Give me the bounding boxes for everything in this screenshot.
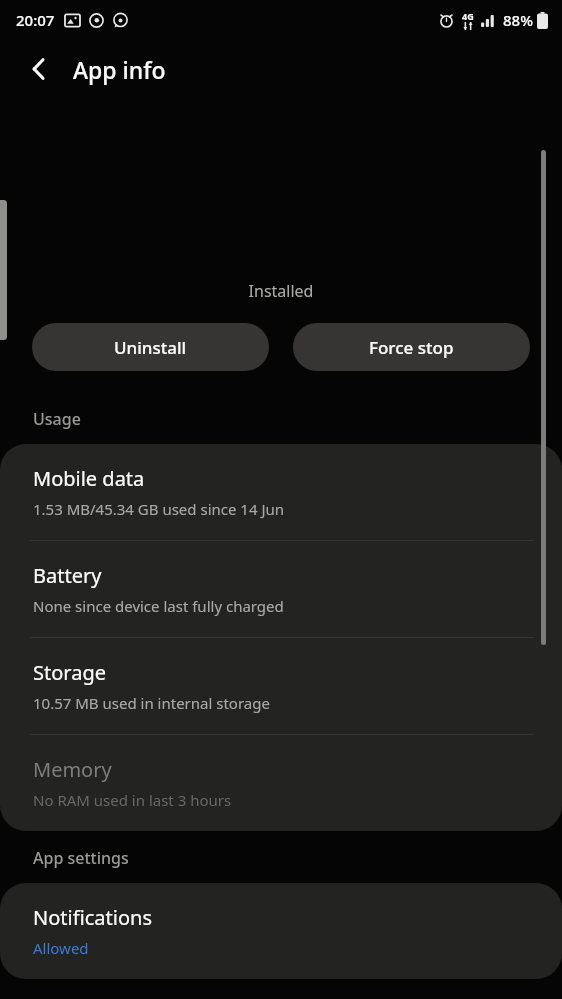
button[interactable]: Memory: [0, 735, 562, 831]
staticText: 88%: [503, 10, 533, 30]
staticText: 10.57 MB used in internal storage: [33, 693, 270, 713]
staticText: Storage: [33, 659, 106, 686]
button[interactable]: Notifications: [0, 883, 562, 979]
staticText: App settings: [33, 847, 129, 869]
staticText: 20:07: [16, 10, 55, 30]
button[interactable]: Storage: [0, 638, 562, 734]
button[interactable]: Back: [18, 48, 60, 90]
staticText: 4G: [462, 10, 474, 22]
staticText: Allowed: [33, 938, 89, 958]
staticText: None since device last fully charged: [33, 596, 284, 616]
button[interactable]: Force stop: [293, 323, 530, 371]
staticText: Mobile data: [33, 465, 145, 492]
button[interactable]: Battery: [0, 541, 562, 637]
staticText: Battery: [33, 562, 102, 589]
staticText: Notifications: [33, 904, 152, 931]
staticText: Memory: [33, 756, 112, 783]
button[interactable]: Mobile data: [0, 444, 562, 540]
staticText: App info: [73, 54, 166, 85]
staticText: Force stop: [369, 336, 454, 359]
staticText: Usage: [33, 408, 81, 430]
staticText: Installed: [0, 280, 562, 302]
staticText: No RAM used in last 3 hours: [33, 790, 232, 810]
button[interactable]: Uninstall: [32, 323, 269, 371]
staticText: 1.53 MB/45.34 GB used since 14 Jun: [33, 499, 285, 519]
staticText: Uninstall: [114, 336, 187, 359]
